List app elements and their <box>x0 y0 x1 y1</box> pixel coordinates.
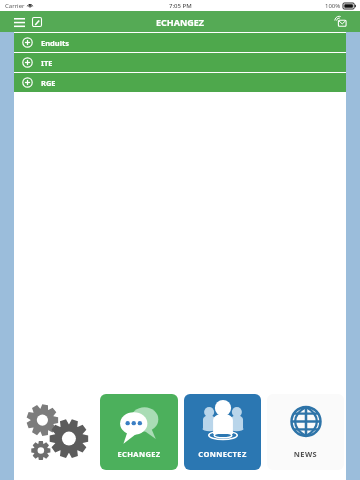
staticText: NEWS <box>267 449 344 459</box>
staticText: RGE <box>41 78 56 88</box>
button[interactable]: Messages <box>333 13 351 31</box>
staticText: Carrier <box>5 2 25 10</box>
button[interactable]: RGE <box>14 73 346 92</box>
staticText: 7:05 PM <box>169 2 192 10</box>
button[interactable]: Menu <box>11 14 27 30</box>
staticText: CONNECTEZ <box>184 449 261 459</box>
staticText: 100% <box>325 2 341 10</box>
staticText: ECHANGEZ <box>100 449 178 459</box>
button[interactable]: ECHANGEZ <box>100 394 178 470</box>
button[interactable]: NEWS <box>267 394 344 470</box>
button[interactable]: CONNECTEZ <box>184 394 261 470</box>
button[interactable]: Enduits <box>14 33 346 52</box>
button[interactable]: ITE <box>14 53 346 72</box>
button[interactable]: Compose message <box>29 14 45 30</box>
staticText: ECHANGEZ <box>156 16 205 28</box>
staticText: ITE <box>41 58 53 68</box>
staticText: Enduits <box>41 38 69 48</box>
